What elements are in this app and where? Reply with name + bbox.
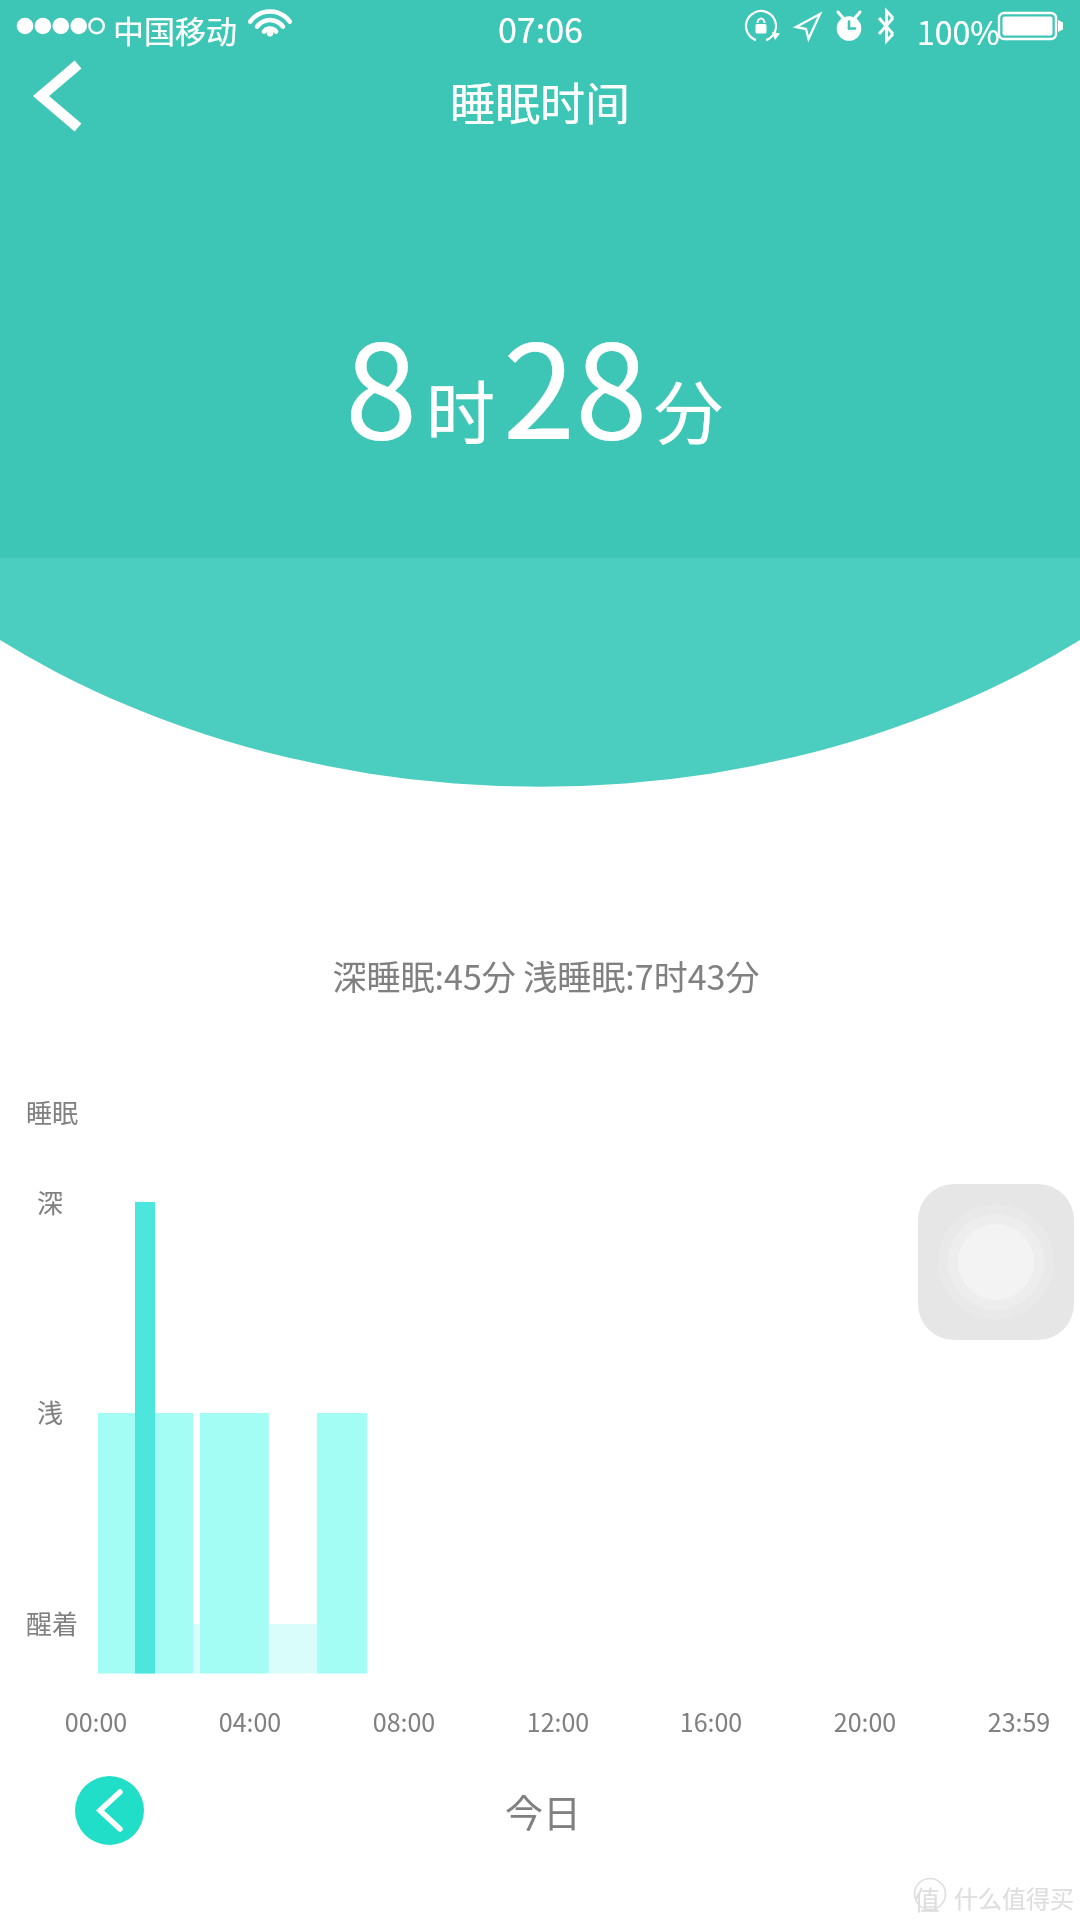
staticText: 中国移动 [113,7,237,52]
staticText: 12:00 [498,1703,618,1739]
staticText: 08:00 [344,1703,464,1739]
staticText: 值 [914,1880,941,1918]
staticText: 睡眠 [26,1093,79,1131]
staticText: 睡眠时间 [450,69,631,134]
staticText: 8 [345,288,418,476]
button[interactable]: 今日 [468,1774,618,1846]
staticText: 07:06 [498,4,583,53]
staticText: 浅 [37,1393,64,1431]
staticText: 00:00 [36,1703,156,1739]
staticText: 04:00 [190,1703,310,1739]
button[interactable]: Previous day [75,1776,144,1845]
staticText: 时 [426,359,495,459]
staticText: 今日 [505,1783,582,1838]
staticText: 深睡眠:45分 浅睡眠:7时43分 [6,951,1080,1000]
staticText: 23:59 [959,1703,1079,1739]
staticText: 100% [917,8,1000,54]
staticText: 16:00 [651,1703,771,1739]
button[interactable]: Back [0,51,110,151]
staticText: 20:00 [805,1703,925,1739]
staticText: 分 [654,359,723,459]
staticText: 什么值得买 [954,1880,1074,1915]
staticText: 28 [503,288,648,476]
staticText: 醒着 [26,1604,79,1642]
staticText: 深 [37,1183,64,1221]
